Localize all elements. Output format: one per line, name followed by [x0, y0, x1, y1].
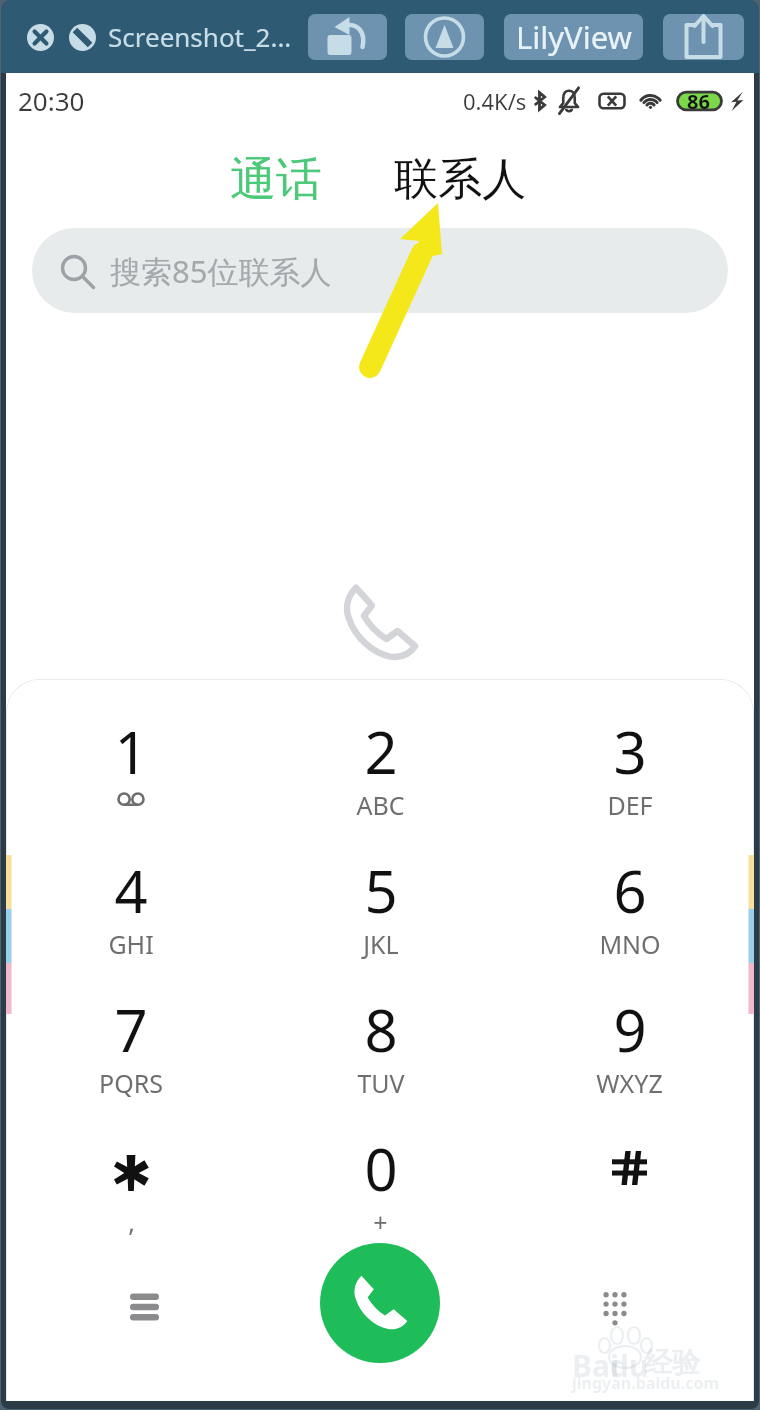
staticText: 0: [364, 1129, 398, 1208]
staticText: 86: [687, 88, 710, 114]
button[interactable]: Call: [320, 1243, 440, 1363]
button[interactable]: 5: [256, 853, 505, 992]
staticText: 4: [114, 851, 148, 930]
button[interactable]: Rotate: [308, 14, 387, 60]
staticText: 9: [613, 990, 647, 1069]
button[interactable]: Annotate: [405, 14, 484, 60]
staticText: 经验: [644, 1345, 700, 1380]
staticText: +: [373, 1205, 388, 1239]
button[interactable]: 3: [505, 714, 754, 853]
staticText: LilyView: [516, 16, 632, 58]
button[interactable]: 1: [6, 714, 256, 853]
button[interactable]: Hide dialpad: [578, 1270, 652, 1344]
staticText: DEF: [607, 788, 653, 822]
staticText: GHI: [108, 927, 154, 961]
button[interactable]: 4: [6, 853, 256, 992]
staticText: ,: [128, 1205, 135, 1239]
staticText: 0.4K/s: [463, 86, 527, 116]
staticText: ABC: [356, 788, 405, 822]
staticText: 5: [364, 851, 398, 930]
staticText: Screenshot_2...: [108, 19, 292, 54]
staticText: 7: [114, 990, 148, 1069]
staticText: 8: [364, 990, 398, 1069]
staticText: MNO: [599, 927, 661, 961]
button[interactable]: 0: [256, 1131, 505, 1270]
staticText: 1: [114, 712, 148, 791]
button[interactable]: 2: [256, 714, 505, 853]
button[interactable]: 9: [505, 992, 754, 1131]
button[interactable]: Reject: [67, 22, 97, 52]
button[interactable]: 搜索85位联系人: [32, 228, 728, 313]
button[interactable]: Call log: [107, 1270, 181, 1344]
button[interactable]: LilyView: [504, 14, 643, 60]
button[interactable]: Share: [663, 14, 744, 60]
button[interactable]: [505, 1131, 754, 1270]
staticText: 联系人: [394, 152, 526, 207]
staticText: jingyan.baidu.com: [572, 1372, 722, 1394]
button[interactable]: 通话: [226, 151, 326, 207]
staticText: PQRS: [99, 1066, 163, 1100]
staticText: 2: [364, 712, 398, 791]
button[interactable]: ,: [6, 1131, 256, 1270]
button[interactable]: 8: [256, 992, 505, 1131]
staticText: 20:30: [18, 83, 85, 118]
staticText: du: [610, 1345, 649, 1386]
staticText: WXYZ: [596, 1066, 663, 1100]
button[interactable]: 联系人: [390, 152, 530, 207]
staticText: 6: [613, 851, 647, 930]
staticText: 通话: [230, 151, 322, 207]
staticText: JKL: [363, 927, 399, 961]
button[interactable]: 7: [6, 992, 256, 1131]
staticText: 3: [613, 712, 647, 791]
staticText: TUV: [357, 1066, 405, 1100]
staticText: 搜索85位联系人: [110, 250, 332, 292]
staticText: Bai: [572, 1345, 619, 1386]
button[interactable]: 6: [505, 853, 754, 992]
button[interactable]: Close: [25, 22, 55, 52]
